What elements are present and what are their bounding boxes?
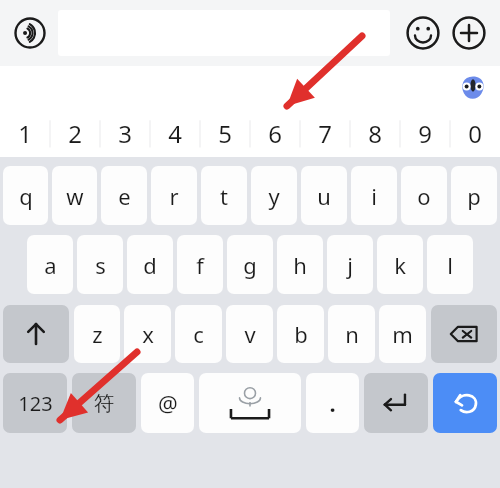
staticText: e bbox=[118, 181, 131, 211]
button[interactable]: y bbox=[251, 166, 297, 225]
button[interactable]: b bbox=[277, 305, 324, 363]
button[interactable]: t bbox=[201, 166, 247, 225]
staticText: a bbox=[44, 250, 57, 280]
button[interactable]: d bbox=[127, 235, 173, 294]
button[interactable]: Voice bbox=[10, 13, 50, 53]
staticText: f bbox=[196, 250, 204, 280]
button[interactable]: Backspace bbox=[431, 305, 497, 363]
button[interactable]: u bbox=[301, 166, 347, 225]
staticText: 8 bbox=[368, 117, 382, 150]
staticText: i bbox=[371, 181, 377, 211]
button[interactable]: g bbox=[227, 235, 273, 294]
button[interactable]: s bbox=[77, 235, 123, 294]
button[interactable]: c bbox=[175, 305, 222, 363]
button[interactable]: 9 bbox=[400, 110, 450, 157]
button[interactable]: i bbox=[351, 166, 397, 225]
staticText: u bbox=[317, 181, 331, 211]
staticText: . bbox=[329, 388, 336, 418]
staticText: k bbox=[394, 250, 406, 280]
staticText: s bbox=[95, 250, 106, 280]
button[interactable]: z bbox=[74, 305, 120, 363]
button[interactable]: 5 bbox=[200, 110, 250, 157]
button[interactable]: e bbox=[101, 166, 147, 225]
staticText: 9 bbox=[418, 117, 432, 150]
button[interactable]: m bbox=[379, 305, 426, 363]
staticText: 1 bbox=[18, 117, 32, 150]
staticText: x bbox=[142, 319, 154, 349]
staticText: g bbox=[243, 250, 257, 280]
staticText: p bbox=[467, 181, 481, 211]
button[interactable]: j bbox=[327, 235, 373, 294]
button[interactable]: 123 bbox=[3, 373, 67, 433]
staticText: r bbox=[169, 181, 179, 211]
staticText: 5 bbox=[218, 117, 232, 150]
staticText: 123 bbox=[18, 390, 53, 417]
staticText: 符 bbox=[94, 391, 114, 416]
button[interactable]: f bbox=[177, 235, 223, 294]
staticText: b bbox=[294, 319, 308, 349]
button[interactable]: 6 bbox=[250, 110, 300, 157]
staticText: q bbox=[19, 181, 33, 211]
staticText: 2 bbox=[68, 117, 82, 150]
button[interactable]: Assistant bbox=[458, 73, 488, 103]
staticText: h bbox=[293, 250, 307, 280]
button[interactable]: n bbox=[328, 305, 375, 363]
button[interactable]: @ bbox=[141, 373, 194, 433]
staticText: n bbox=[345, 319, 359, 349]
button[interactable]: Emoji bbox=[402, 12, 444, 54]
staticText: m bbox=[392, 319, 413, 349]
button[interactable]: v bbox=[226, 305, 273, 363]
button[interactable]: p bbox=[451, 166, 497, 225]
staticText: w bbox=[66, 181, 84, 211]
staticText: l bbox=[447, 250, 453, 280]
button[interactable]: . bbox=[306, 373, 359, 433]
staticText: 4 bbox=[168, 117, 182, 150]
button[interactable]: q bbox=[3, 166, 48, 225]
button[interactable]: 4 bbox=[150, 110, 200, 157]
button[interactable]: Space bbox=[199, 373, 301, 433]
button[interactable]: 7 bbox=[300, 110, 350, 157]
staticText: o bbox=[417, 181, 431, 211]
staticText: c bbox=[193, 319, 204, 349]
button[interactable]: h bbox=[277, 235, 323, 294]
button[interactable]: k bbox=[377, 235, 423, 294]
button[interactable] bbox=[58, 10, 390, 56]
staticText: z bbox=[92, 319, 103, 349]
button[interactable]: x bbox=[124, 305, 171, 363]
button[interactable]: Shift bbox=[3, 305, 69, 363]
button[interactable]: r bbox=[151, 166, 197, 225]
button[interactable]: 符 bbox=[72, 373, 136, 433]
button[interactable]: 1 bbox=[0, 110, 50, 157]
staticText: 0 bbox=[468, 117, 482, 150]
staticText: j bbox=[347, 250, 353, 280]
staticText: @ bbox=[158, 388, 178, 418]
staticText: 7 bbox=[318, 117, 332, 150]
button[interactable]: 8 bbox=[350, 110, 400, 157]
staticText: d bbox=[143, 250, 157, 280]
button[interactable]: Enter bbox=[433, 373, 497, 433]
button[interactable]: Add bbox=[448, 12, 490, 54]
button[interactable]: w bbox=[52, 166, 97, 225]
staticText: t bbox=[220, 181, 228, 211]
button[interactable]: a bbox=[27, 235, 73, 294]
button[interactable]: l bbox=[427, 235, 473, 294]
button[interactable]: 2 bbox=[50, 110, 100, 157]
staticText: v bbox=[244, 319, 256, 349]
staticText: 6 bbox=[268, 117, 282, 150]
button[interactable]: New line bbox=[364, 373, 428, 433]
button[interactable]: 0 bbox=[450, 110, 500, 157]
button[interactable]: o bbox=[401, 166, 447, 225]
button[interactable]: 3 bbox=[100, 110, 150, 157]
staticText: 3 bbox=[118, 117, 132, 150]
staticText: y bbox=[268, 181, 280, 211]
